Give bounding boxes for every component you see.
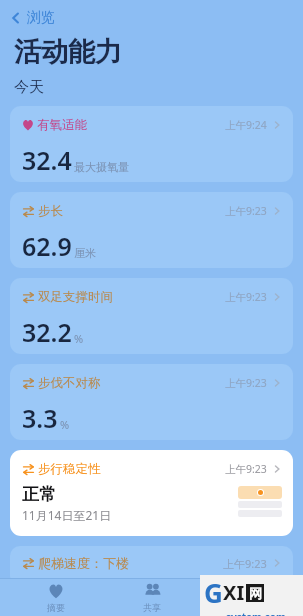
staticText: 爬梯速度：下楼 xyxy=(38,555,129,571)
staticText: % xyxy=(60,417,70,432)
button[interactable]: 步伐不对称 xyxy=(10,364,293,440)
staticText: 上午9:23 xyxy=(225,462,267,476)
staticText: G xyxy=(204,575,223,610)
staticText: 上午9:23 xyxy=(225,290,267,304)
staticText: 32.2 xyxy=(22,315,72,349)
button[interactable]: 摘要 xyxy=(16,583,96,613)
staticText: 正常 xyxy=(22,484,56,505)
staticText: 最大摄氧量 xyxy=(74,160,129,174)
staticText: 网 xyxy=(249,585,262,601)
button[interactable]: 双足支撑时间 xyxy=(10,278,293,354)
staticText: 上午9:23 xyxy=(223,556,267,571)
staticText: 步长 xyxy=(38,203,63,219)
other: 摘要 xyxy=(48,583,64,599)
staticText: 摘要 xyxy=(47,602,65,613)
other: 共享 xyxy=(144,582,161,599)
staticText: 活动能力 xyxy=(14,35,122,69)
staticText: 11月14日至21日 xyxy=(22,507,112,523)
other: 浏览 xyxy=(239,583,255,599)
staticText: 浏览 xyxy=(27,9,55,27)
button[interactable]: 步长 xyxy=(10,192,293,268)
staticText: 32.4 xyxy=(22,143,72,177)
staticText: 双足支撑时间 xyxy=(38,289,113,305)
staticText: 今天 xyxy=(14,78,44,97)
button[interactable]: 浏览 xyxy=(8,9,55,27)
staticText: 上午9:24 xyxy=(225,118,267,132)
staticText: 3.3 xyxy=(22,401,58,435)
button[interactable]: 共享 xyxy=(112,582,192,613)
staticText: XI xyxy=(223,579,245,606)
staticText: 步伐不对称 xyxy=(38,375,101,391)
staticText: 上午9:23 xyxy=(225,204,267,218)
button[interactable]: 步行稳定性 xyxy=(10,450,293,536)
button[interactable]: 浏览 xyxy=(207,583,287,613)
staticText: 有氧适能 xyxy=(37,117,87,133)
staticText: % xyxy=(74,331,84,346)
staticText: 厘米 xyxy=(74,246,96,260)
staticText: 步行稳定性 xyxy=(38,461,101,477)
button[interactable]: 爬梯速度：下楼 xyxy=(10,546,293,586)
staticText: 上午9:23 xyxy=(225,376,267,390)
button[interactable]: 有氧适能 xyxy=(10,106,293,182)
staticText: 共享 xyxy=(143,602,161,613)
staticText: 62.9 xyxy=(22,229,72,263)
staticText: system.com xyxy=(226,610,286,616)
